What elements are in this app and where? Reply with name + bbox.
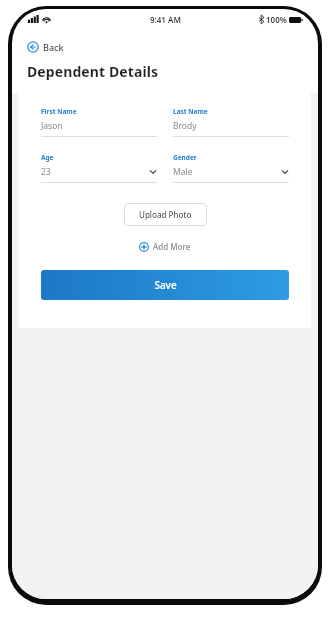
staticText: Dependent Details [27, 62, 159, 81]
button[interactable]: Save [41, 270, 289, 300]
staticText: First Name [41, 107, 77, 116]
staticText: Last Name [173, 107, 208, 116]
staticText: 23 [41, 166, 149, 178]
staticText: Add More [153, 241, 191, 252]
staticText: Back [43, 41, 64, 53]
button[interactable]: Last Name [173, 107, 289, 137]
other: Back [27, 41, 39, 53]
staticText: Upload Photo [139, 209, 192, 220]
staticText: Save [154, 278, 177, 292]
staticText: Jason [41, 120, 157, 132]
button[interactable]: Age [41, 153, 157, 183]
other: Open Gender dropdown [281, 168, 289, 176]
button[interactable]: Gender [173, 153, 289, 183]
staticText: 100% [266, 14, 287, 25]
staticText: Male [173, 166, 281, 178]
button[interactable]: Back [25, 39, 66, 55]
button[interactable]: First Name [41, 107, 157, 137]
button[interactable]: Upload Photo [124, 203, 207, 226]
staticText: 9:41 AM [150, 14, 181, 25]
button[interactable]: Add More [136, 239, 194, 254]
other: Add More [139, 242, 149, 252]
other: Open Age dropdown [149, 168, 157, 176]
staticText: Age [41, 153, 54, 162]
staticText: Brody [173, 120, 289, 132]
staticText: Gender [173, 153, 197, 162]
